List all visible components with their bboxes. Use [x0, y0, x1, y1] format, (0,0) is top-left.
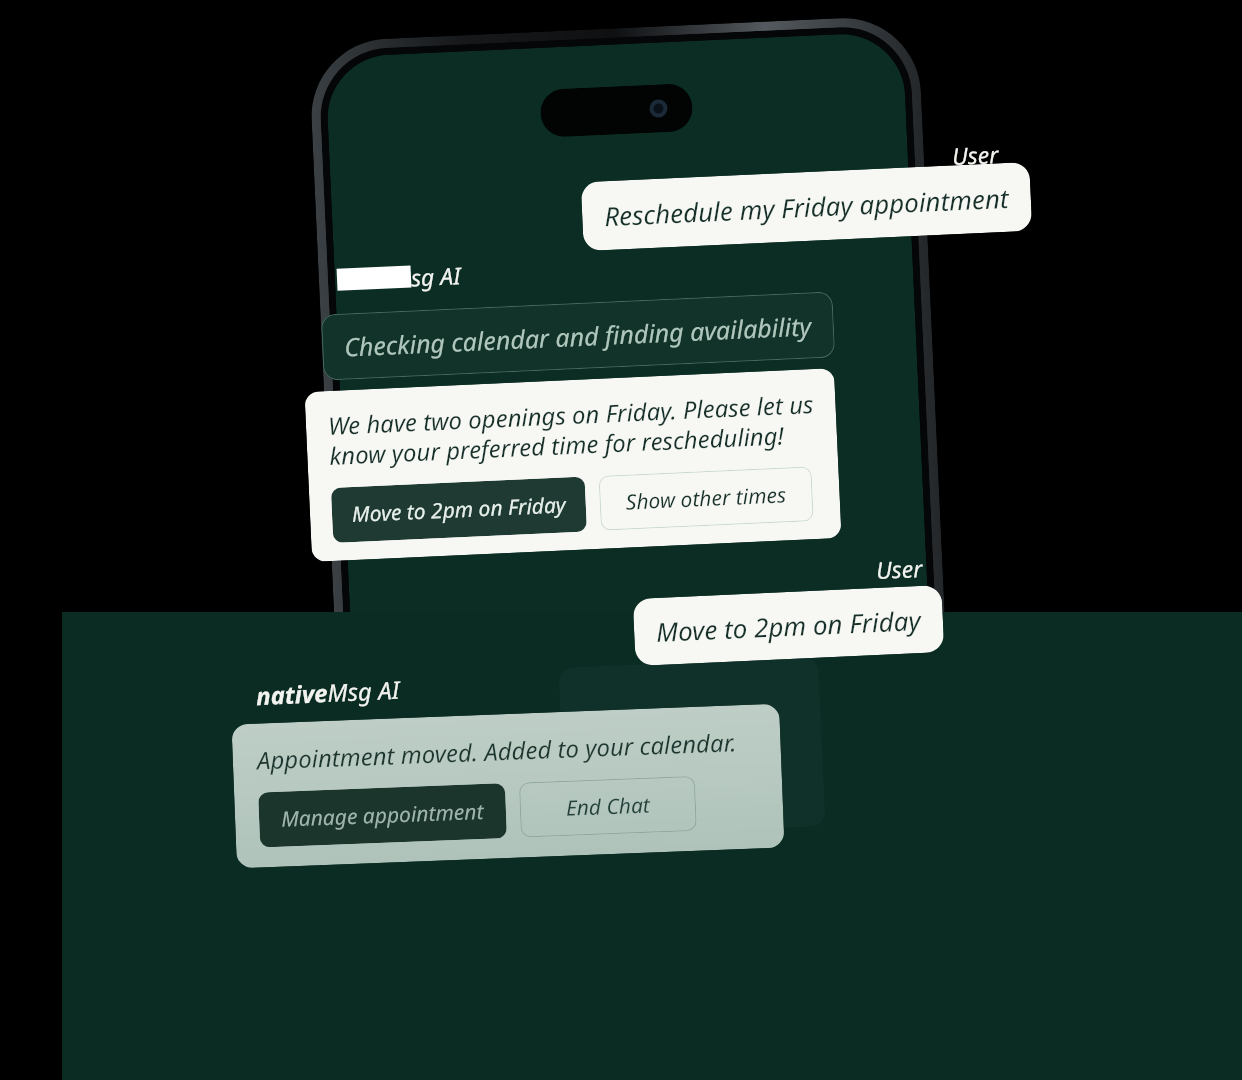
staticText: Checking calendar and finding availabili… — [343, 308, 813, 364]
staticText: Move to 2pm on Friday — [655, 602, 922, 649]
staticText: Reschedule my Friday appointment — [603, 180, 1010, 233]
staticText: User — [951, 138, 1000, 171]
button[interactable]: Move to 2pm on Friday — [633, 585, 944, 666]
staticText: Manage appointment — [281, 797, 485, 834]
staticText: User — [875, 552, 924, 585]
staticText: Move to 2pm on Friday — [351, 490, 566, 529]
staticText: sg AI — [410, 259, 462, 292]
button[interactable]: Reschedule my Friday appointment — [581, 162, 1032, 251]
button[interactable]: Manage appointment — [258, 783, 507, 847]
staticText: Show other times — [625, 480, 787, 517]
staticText: nativeMsg AI — [255, 673, 401, 712]
staticText: Appointment moved. Added to your calenda… — [256, 725, 737, 777]
button[interactable]: Show other times — [598, 466, 814, 531]
button[interactable]: Checking calendar and finding availabili… — [321, 291, 835, 381]
staticText: We have two openings on Friday. Please l… — [327, 387, 816, 472]
staticText: End Chat — [565, 791, 650, 823]
button[interactable]: Move to 2pm on Friday — [331, 476, 587, 543]
button[interactable]: End Chat — [519, 776, 697, 837]
